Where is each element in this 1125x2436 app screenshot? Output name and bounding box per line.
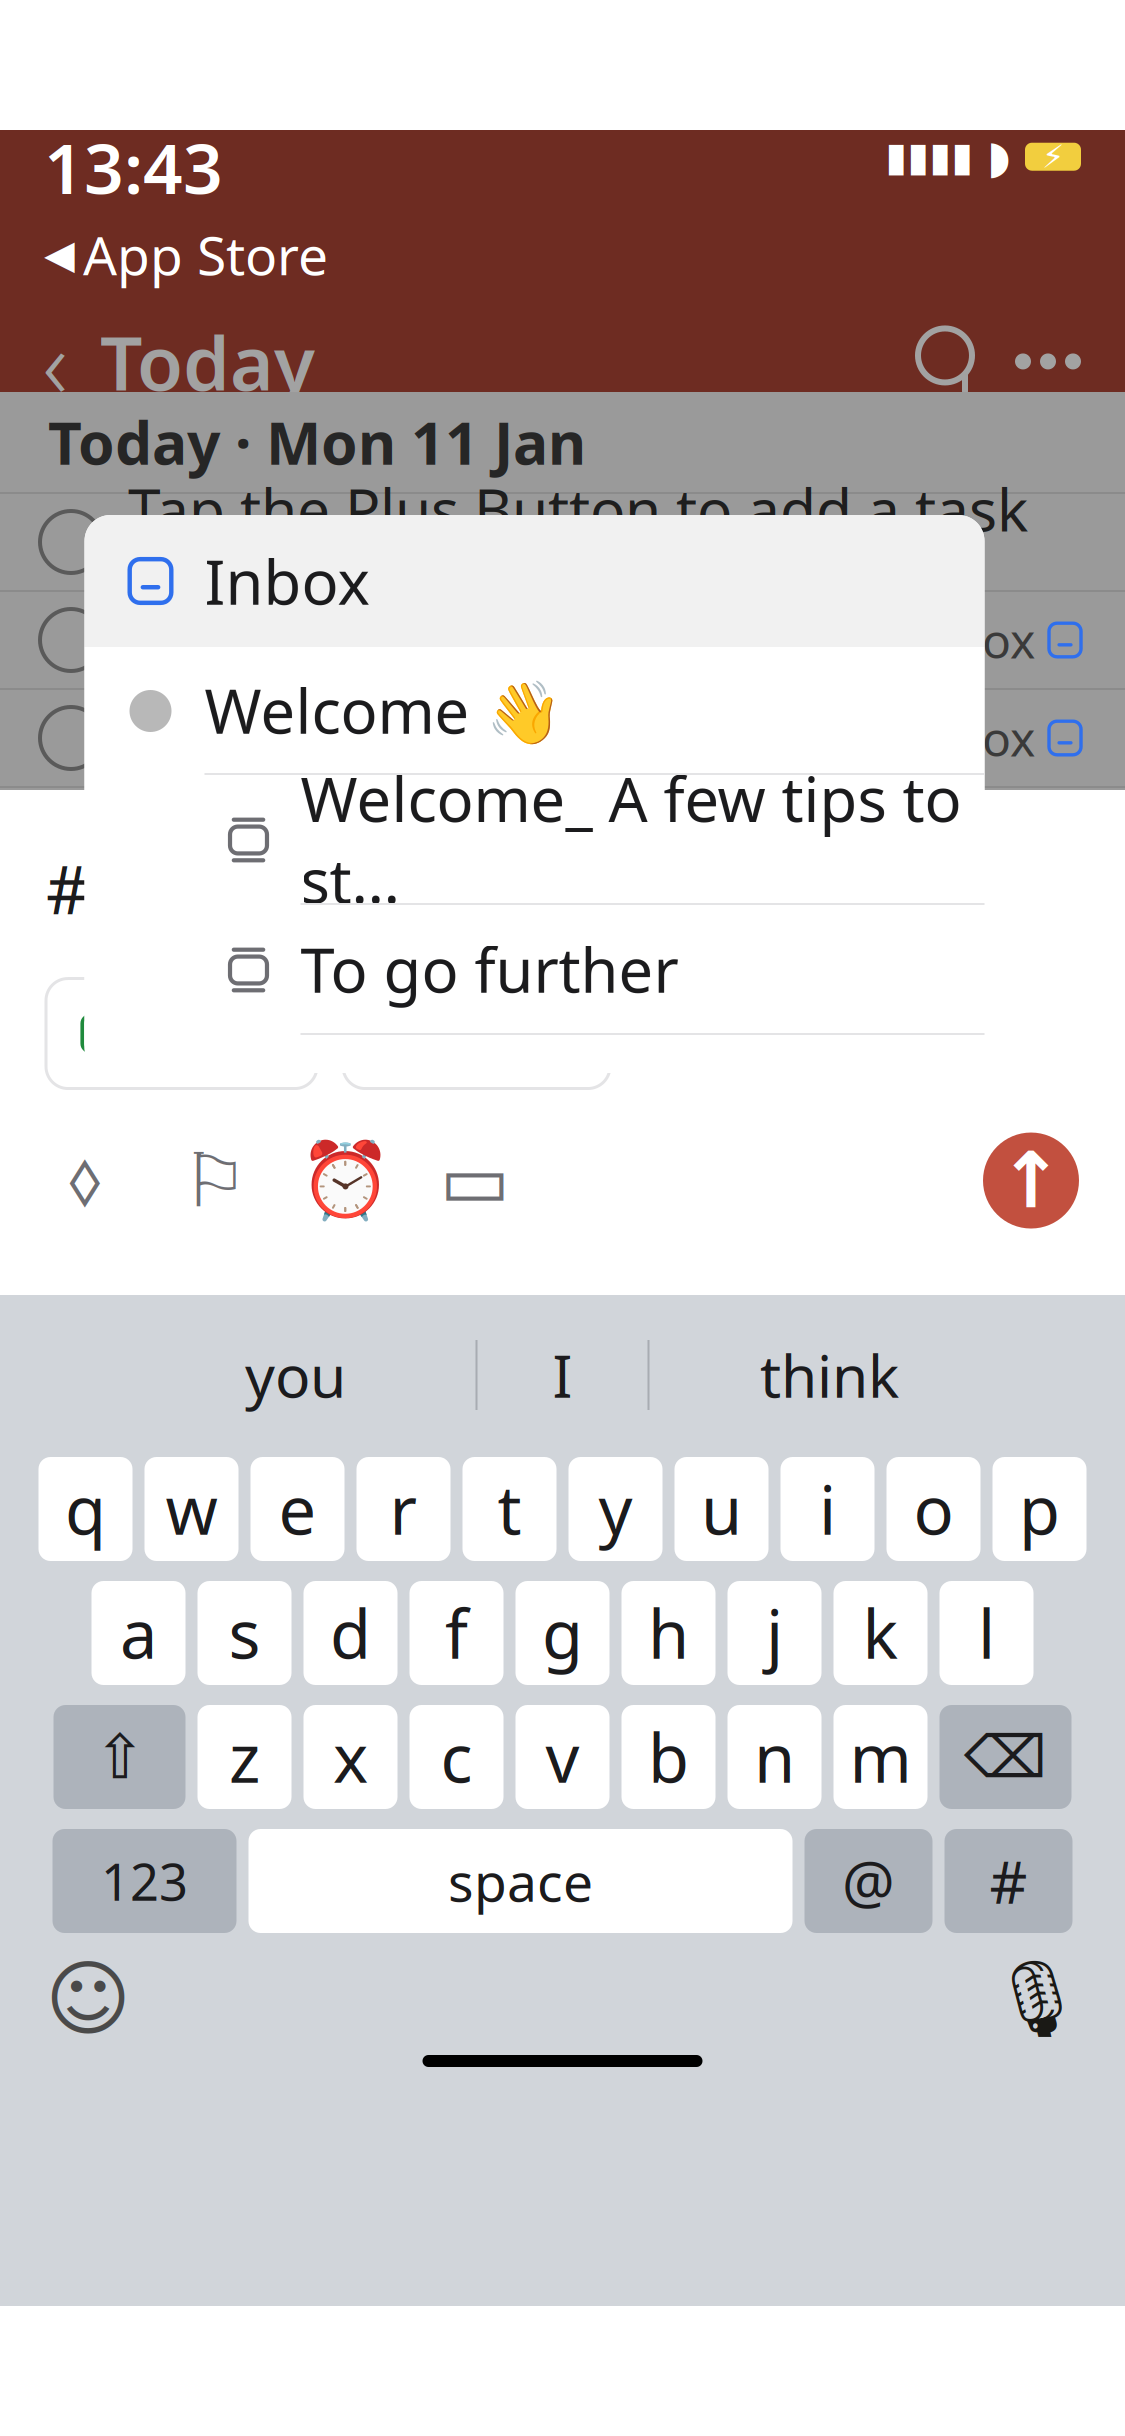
staticText: To go further — [300, 928, 678, 1010]
staticText: n — [754, 1713, 795, 1801]
staticText: j — [766, 1589, 783, 1677]
button[interactable]: I — [477, 1315, 647, 1435]
button[interactable]: To go further — [84, 905, 984, 1035]
button[interactable]: Dictate — [987, 1949, 1087, 2049]
button[interactable]: a — [91, 1581, 185, 1685]
staticText: you — [245, 1336, 346, 1414]
staticText: o — [913, 1465, 953, 1553]
staticText: r — [389, 1465, 417, 1553]
staticText: i — [819, 1465, 836, 1553]
staticText: ↑ — [998, 1137, 1063, 1224]
button[interactable]: q — [38, 1457, 132, 1561]
button[interactable]: Comment — [436, 1137, 514, 1223]
button[interactable]: n — [727, 1705, 821, 1809]
button[interactable]: ⇧ — [53, 1705, 185, 1809]
staticText: x — [333, 1713, 368, 1801]
button[interactable]: h — [621, 1581, 715, 1685]
staticText: m — [849, 1713, 911, 1801]
button[interactable]: y — [568, 1457, 662, 1561]
button[interactable]: d — [303, 1581, 397, 1685]
staticText: ⏰ — [298, 1138, 391, 1223]
button[interactable]: b — [621, 1705, 715, 1809]
button[interactable]: ⌫ — [939, 1705, 1071, 1809]
staticText: space — [448, 1846, 593, 1916]
button[interactable]: k — [833, 1581, 927, 1685]
staticText: Inbox — [906, 608, 1035, 672]
button[interactable]: Inbox — [84, 515, 984, 647]
staticText: Today — [100, 312, 315, 411]
button[interactable]: Today — [46, 978, 317, 1088]
button[interactable]: Welcome 👋 — [84, 647, 984, 775]
staticText: q — [65, 1465, 106, 1553]
staticText: Inbox — [906, 706, 1035, 770]
staticText: ◗ — [987, 131, 1011, 182]
staticText: k — [862, 1589, 898, 1677]
staticText: Get started — [128, 699, 436, 777]
button[interactable]: p — [992, 1457, 1086, 1561]
staticText: # — [989, 1842, 1027, 1920]
staticText: d — [330, 1589, 371, 1677]
button[interactable]: Reminder — [306, 1137, 384, 1223]
button[interactable]: f — [409, 1581, 503, 1685]
staticText: ⚡︎ — [1042, 138, 1064, 175]
button[interactable]: s — [197, 1581, 291, 1685]
staticText: ⚐ — [181, 1138, 248, 1223]
staticText: 123 — [101, 1847, 188, 1915]
staticText: think — [760, 1336, 899, 1414]
button[interactable]: @ — [804, 1829, 932, 1933]
staticText: g — [542, 1589, 583, 1677]
button[interactable]: i — [780, 1457, 874, 1561]
staticText: ☺ — [45, 1952, 131, 2046]
button[interactable]: you — [115, 1315, 475, 1435]
staticText: b — [648, 1713, 689, 1801]
button[interactable]: think — [649, 1315, 1009, 1435]
staticText: Inbox — [204, 540, 369, 622]
button[interactable]: m — [833, 1705, 927, 1809]
button[interactable]: z — [197, 1705, 291, 1809]
button[interactable]: x — [303, 1705, 397, 1809]
staticText: ▭ — [439, 1138, 510, 1223]
staticText: f — [445, 1589, 468, 1677]
button[interactable]: c — [409, 1705, 503, 1809]
button[interactable]: v — [515, 1705, 609, 1809]
button[interactable]: r — [356, 1457, 450, 1561]
staticText: App Store — [83, 219, 328, 290]
button[interactable]: space — [248, 1829, 792, 1933]
staticText: s — [228, 1589, 260, 1677]
button[interactable]: Inbox — [343, 978, 610, 1088]
button[interactable]: # — [944, 1829, 1072, 1933]
staticText: Tap the Plus Button to add a task ✚ — [128, 470, 1043, 614]
staticText: ◀ — [44, 232, 75, 277]
staticText: ⌫ — [964, 1724, 1047, 1790]
staticText: h — [648, 1589, 689, 1677]
button[interactable]: e — [250, 1457, 344, 1561]
staticText: p — [1019, 1465, 1060, 1553]
button[interactable]: Back — [10, 316, 100, 406]
button[interactable]: Emoji — [38, 1949, 138, 2049]
staticText: a — [120, 1589, 157, 1677]
staticText: Welcome_ A few tips to st… — [300, 758, 961, 920]
button[interactable]: w — [144, 1457, 238, 1561]
staticText: ‹ — [42, 298, 67, 425]
staticText: 13:43 — [44, 121, 223, 213]
staticText: t — [497, 1465, 521, 1553]
button[interactable]: Labels — [46, 1137, 124, 1223]
staticText: ⇧ — [94, 1722, 145, 1792]
button[interactable]: More — [993, 313, 1103, 409]
button[interactable]: Welcome_ A few tips to st… — [84, 775, 984, 905]
button[interactable]: Priority — [176, 1137, 254, 1223]
staticText: Today · Mon 11 Jan — [48, 403, 586, 481]
staticText: u — [701, 1465, 742, 1553]
button[interactable]: o — [886, 1457, 980, 1561]
button[interactable]: u — [674, 1457, 768, 1561]
staticText: ⬨ — [68, 1144, 102, 1217]
button[interactable]: t — [462, 1457, 556, 1561]
button[interactable]: Add task — [983, 1132, 1079, 1228]
button[interactable]: l — [939, 1581, 1033, 1685]
button[interactable]: 123 — [52, 1829, 236, 1933]
staticText: Welcome 👋 — [204, 669, 561, 751]
button[interactable]: j — [727, 1581, 821, 1685]
button[interactable]: Search — [897, 313, 993, 409]
staticText: Inbox — [429, 996, 580, 1071]
button[interactable]: g — [515, 1581, 609, 1685]
